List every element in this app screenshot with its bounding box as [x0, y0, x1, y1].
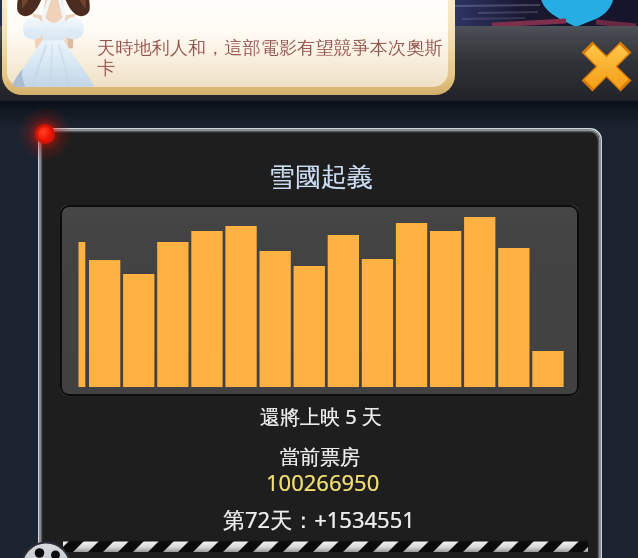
staticText: 天時地利人和，這部電影有望競爭本次奧斯卡: [97, 36, 452, 79]
staticText: 第72天：+1534551: [223, 504, 415, 534]
staticText: 當前票房: [280, 445, 360, 470]
staticText: 還將上映 5 天: [260, 403, 382, 430]
button[interactable]: Close: [581, 41, 632, 92]
staticText: 雪國起義: [269, 161, 373, 194]
staticText: 100266950: [266, 467, 380, 497]
